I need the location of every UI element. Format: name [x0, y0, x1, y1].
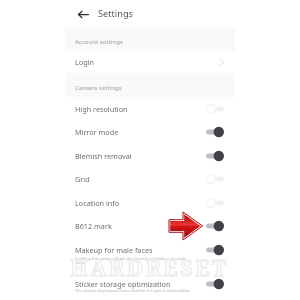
staticText: The stickers that haven't been used for … [75, 288, 191, 293]
button[interactable]: Toggle off [206, 197, 224, 209]
staticText: Sticker storage optimization [75, 279, 171, 289]
staticText: Mirror mode [75, 127, 119, 137]
staticText: B612 mark [75, 221, 112, 231]
staticText: HARDRESET [70, 254, 229, 283]
button[interactable]: Toggle off [206, 173, 224, 185]
staticText: Login [75, 57, 94, 67]
button[interactable]: Toggle on [206, 278, 224, 290]
button[interactable] [65, 269, 235, 300]
button[interactable] [65, 97, 235, 121]
button[interactable]: Toggle on [206, 244, 224, 256]
staticText: Enabling this option adjusts the intensi… [75, 256, 186, 261]
staticText: Camera settings [75, 84, 122, 92]
button[interactable] [65, 120, 235, 144]
button[interactable] [65, 214, 235, 238]
button[interactable] [65, 51, 235, 73]
button[interactable] [65, 144, 235, 168]
staticText: Grid [75, 174, 90, 184]
staticText: Makeup for male faces [75, 245, 153, 255]
staticText: Account settings [75, 38, 123, 46]
button[interactable]: Toggle on [206, 126, 224, 138]
staticText: faces. [75, 260, 86, 265]
button[interactable]: Toggle on [206, 220, 224, 232]
staticText: High resolution [75, 104, 128, 114]
staticText: Location info [75, 198, 120, 208]
button[interactable] [65, 238, 235, 269]
staticText: Settings [98, 7, 133, 20]
button[interactable]: Toggle on [206, 150, 224, 162]
button[interactable] [65, 167, 235, 191]
button[interactable] [65, 191, 235, 215]
staticText: Blemish removal [75, 151, 132, 161]
button[interactable]: Back [77, 8, 90, 21]
button[interactable]: Toggle off [206, 103, 224, 115]
